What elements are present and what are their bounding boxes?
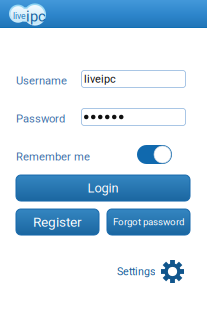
staticText: ipc (26, 8, 46, 25)
button[interactable]: Register (16, 209, 99, 235)
button[interactable]: Forgot password (107, 209, 190, 235)
staticText: liveipc (84, 73, 116, 85)
staticText: Remember me (16, 150, 90, 163)
staticText: Password (16, 112, 65, 125)
staticText: Username (16, 74, 67, 87)
staticText: Login (87, 180, 118, 195)
button[interactable]: Remember me (137, 145, 172, 164)
staticText: Forgot password (113, 216, 184, 228)
staticText: Register (33, 214, 82, 230)
button[interactable]: Settings (117, 260, 184, 283)
staticText: Settings (117, 265, 156, 278)
button[interactable]: Login (16, 175, 190, 201)
staticText: live (13, 11, 26, 21)
